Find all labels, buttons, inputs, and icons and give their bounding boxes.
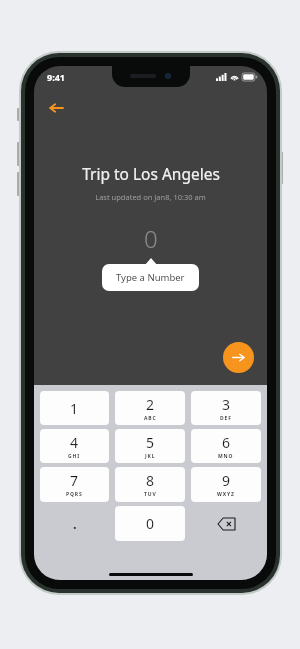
staticText: 0: [146, 514, 155, 533]
button[interactable]: 3: [191, 391, 261, 425]
staticText: 9: [222, 471, 231, 490]
staticText: .: [73, 515, 77, 533]
button[interactable]: 9: [191, 467, 261, 502]
staticText: JKL: [145, 453, 156, 460]
staticText: WXYZ: [217, 491, 235, 498]
staticText: Last updated on Jan8, 10:30 am: [95, 192, 206, 202]
staticText: Trip to Los Angeles: [82, 163, 220, 184]
button[interactable]: Back: [42, 94, 70, 122]
button[interactable]: 7: [40, 467, 109, 502]
staticText: 8: [146, 471, 155, 490]
staticText: 2: [146, 395, 155, 414]
staticText: TUV: [144, 491, 157, 498]
staticText: 7: [70, 471, 79, 490]
button[interactable]: 4: [40, 429, 109, 463]
staticText: 1: [70, 399, 79, 418]
staticText: 6: [222, 433, 231, 452]
button[interactable]: Next: [223, 342, 254, 373]
staticText: 3: [222, 395, 231, 414]
button[interactable]: 1: [40, 391, 109, 425]
button[interactable]: 6: [191, 429, 261, 463]
button[interactable]: 5: [115, 429, 185, 463]
staticText: 0: [144, 222, 158, 255]
staticText: 5: [146, 433, 155, 452]
button[interactable]: 0: [115, 506, 185, 541]
staticText: Type a Number: [116, 271, 185, 284]
staticText: PQRS: [66, 491, 83, 498]
staticText: 4: [70, 433, 79, 452]
button[interactable]: 8: [115, 467, 185, 502]
staticText: ABC: [144, 415, 157, 422]
staticText: 9:41: [47, 71, 65, 83]
button[interactable]: Type a Number: [102, 264, 199, 291]
button[interactable]: 2: [115, 391, 185, 425]
staticText: DEF: [220, 415, 232, 422]
staticText: MNO: [218, 453, 234, 460]
button[interactable]: Backspace: [191, 507, 261, 540]
button[interactable]: .: [40, 507, 109, 540]
staticText: GHI: [68, 453, 81, 460]
